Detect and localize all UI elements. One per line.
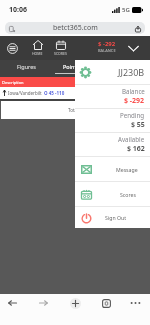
- button[interactable]: Iowa/Vanderbilt: [0, 87, 150, 99]
- button[interactable]: Available: [75, 133, 150, 156]
- button[interactable]: betct365.com: [5, 22, 145, 34]
- staticText: Teams: [108, 63, 125, 70]
- button[interactable]: $ -292: [92, 40, 121, 53]
- staticText: $ -292: [98, 40, 116, 48]
- staticText: $ 55: [131, 120, 145, 130]
- staticText: Iowa/Vanderbilt: [8, 90, 42, 96]
- staticText: Balance: [122, 87, 145, 95]
- button[interactable]: Figures: [4, 60, 49, 77]
- button[interactable]: Forward: [34, 294, 52, 312]
- button[interactable]: Expand account: [126, 41, 140, 55]
- staticText: 5G: [122, 6, 130, 14]
- button[interactable]: JJ230B: [75, 60, 150, 84]
- button[interactable]: Share: [133, 24, 142, 33]
- button[interactable]: Page settings: [7, 24, 16, 33]
- button[interactable]: Teams: [94, 60, 139, 77]
- button[interactable]: HOME: [31, 40, 44, 56]
- staticText: Points: [63, 63, 80, 70]
- button[interactable]: New Tab: [66, 294, 84, 312]
- staticText: Sign Out: [105, 214, 127, 221]
- staticText: Figures: [17, 63, 36, 70]
- button[interactable]: Balance: [75, 85, 150, 108]
- staticText: JJ230B: [118, 66, 145, 78]
- staticText: betct365.com: [53, 23, 98, 33]
- staticText: O 45 -110: [44, 90, 65, 96]
- staticText: Scores: [120, 191, 136, 198]
- staticText: Description: [2, 80, 24, 85]
- button[interactable]: SCORES: [53, 40, 68, 56]
- staticText: $ 162: [127, 144, 145, 154]
- button[interactable]: Menu: [5, 41, 19, 55]
- button[interactable]: Points: [49, 60, 94, 77]
- staticText: HOME: [32, 51, 43, 56]
- staticText: 10:06: [9, 5, 27, 15]
- button[interactable]: More: [126, 294, 144, 312]
- staticText: BALANCE: [98, 48, 116, 53]
- button[interactable]: Message: [75, 157, 150, 181]
- button[interactable]: Total: [1, 101, 149, 119]
- button[interactable]: Scores: [75, 182, 150, 206]
- staticText: Pending: [120, 111, 145, 119]
- staticText: $ -292: [124, 96, 145, 106]
- button[interactable]: Back: [3, 294, 21, 312]
- staticText: Available: [118, 135, 145, 143]
- button[interactable]: Sign Out: [75, 207, 150, 228]
- button[interactable]: Pending: [75, 109, 150, 132]
- staticText: Message: [116, 166, 138, 173]
- staticText: SCORES: [54, 51, 67, 56]
- staticText: Total: [68, 107, 79, 113]
- button[interactable]: Tabs: [97, 294, 115, 312]
